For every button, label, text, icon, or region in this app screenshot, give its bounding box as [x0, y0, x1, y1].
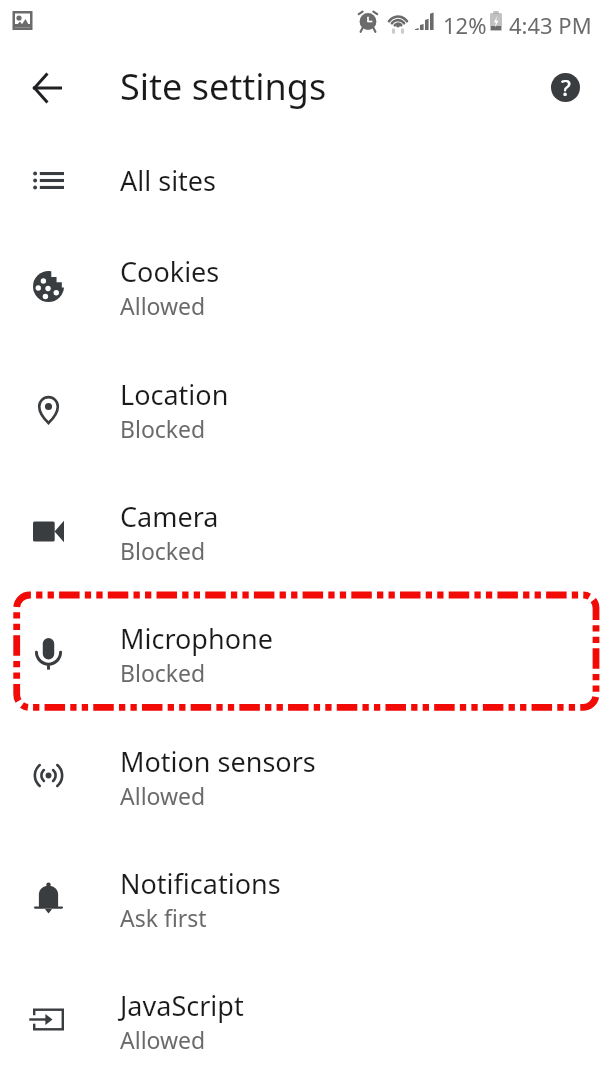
staticText: Allowed [120, 1024, 206, 1055]
button[interactable]: Motion sensors [0, 714, 607, 837]
staticText: Location [120, 376, 229, 413]
staticText: ? [561, 72, 571, 101]
button[interactable]: Microphone [0, 592, 607, 714]
staticText: Allowed [120, 290, 206, 321]
staticText: All sites [120, 162, 217, 199]
button[interactable]: Navigate up [9, 50, 85, 126]
staticText: 12% [443, 10, 487, 40]
button[interactable]: Camera [0, 470, 607, 592]
staticText: 4:43 PM [509, 10, 592, 40]
button[interactable]: All sites [0, 135, 607, 225]
staticText: Blocked [120, 657, 206, 688]
button[interactable]: Location [0, 347, 607, 470]
button[interactable]: Help [530, 52, 600, 122]
button[interactable]: JavaScript [0, 959, 607, 1080]
staticText: Microphone [120, 620, 273, 657]
staticText: Allowed [120, 780, 206, 811]
staticText: Motion sensors [120, 743, 316, 780]
button[interactable]: Notifications [0, 837, 607, 959]
button[interactable]: Cookies [0, 225, 607, 347]
staticText: Site settings [120, 62, 327, 111]
staticText: Ask first [120, 902, 207, 933]
staticText: Cookies [120, 253, 220, 290]
staticText: Blocked [120, 413, 206, 444]
staticText: JavaScript [120, 987, 244, 1024]
staticText: Notifications [120, 865, 281, 902]
staticText: Camera [120, 498, 219, 535]
staticText: Blocked [120, 535, 206, 566]
